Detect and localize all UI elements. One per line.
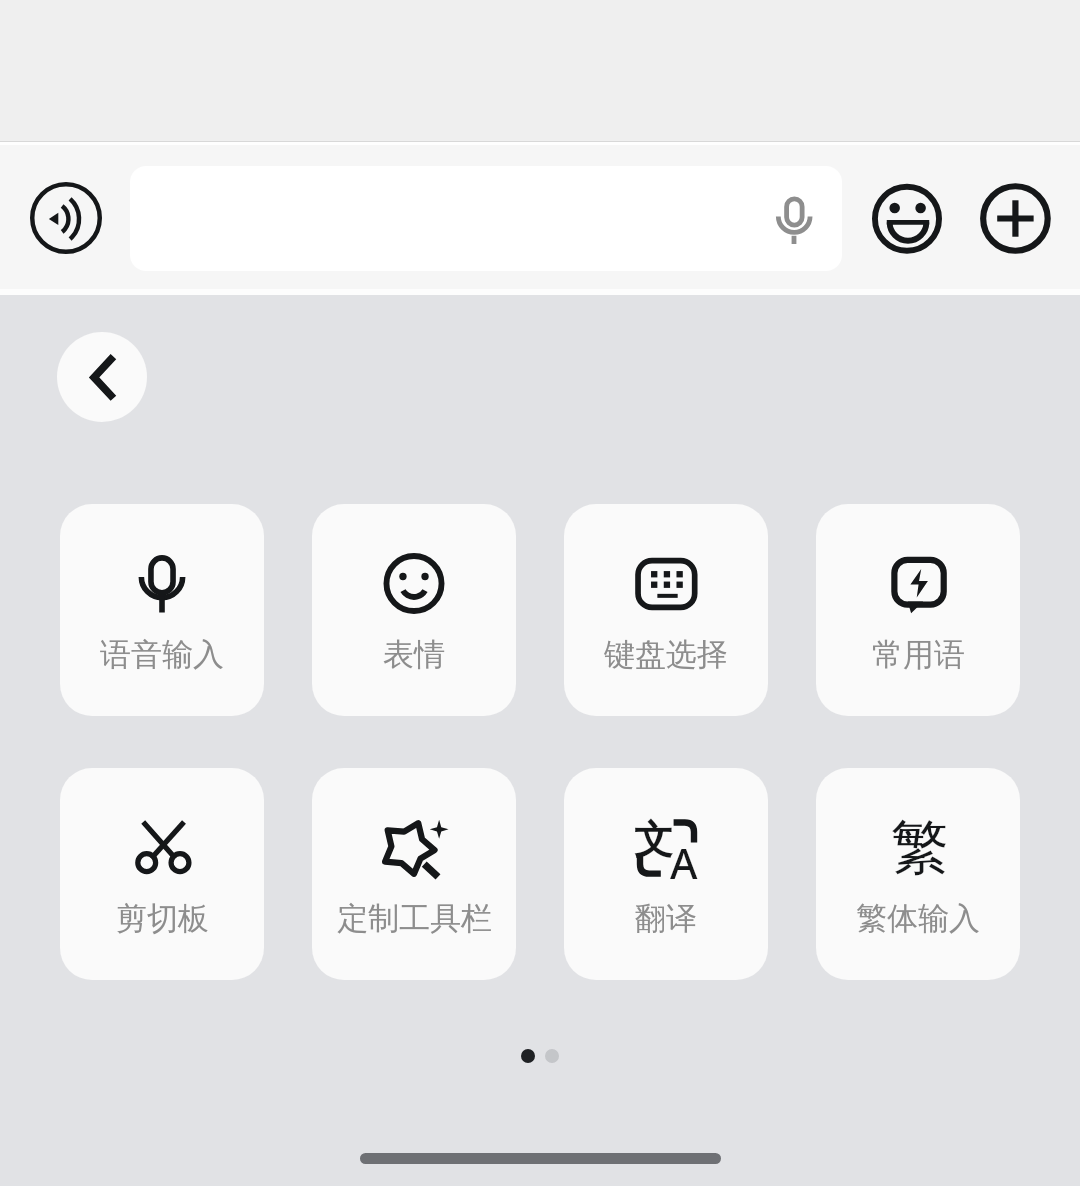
- button[interactable]: Sound settings: [30, 182, 102, 254]
- staticText: 繁: [891, 811, 949, 884]
- staticText: A: [670, 834, 698, 891]
- button[interactable]: Back: [57, 332, 147, 422]
- staticText: 语音输入: [100, 635, 224, 674]
- button[interactable]: Add: [980, 182, 1052, 254]
- button[interactable]: 键盘选择: [564, 504, 768, 716]
- staticText: 翻译: [635, 899, 697, 938]
- staticText: 表情: [383, 635, 445, 674]
- staticText: 键盘选择: [604, 635, 728, 674]
- button[interactable]: 表情: [312, 504, 516, 716]
- staticText: 常用语: [872, 635, 965, 674]
- button[interactable]: 文: [564, 768, 768, 980]
- button[interactable]: 常用语: [816, 504, 1020, 716]
- button[interactable]: Voice input: [766, 192, 822, 248]
- button[interactable]: 语音输入: [60, 504, 264, 716]
- button[interactable]: 繁: [816, 768, 1020, 980]
- button[interactable]: Voice input: [130, 166, 842, 271]
- button[interactable]: Emoji: [872, 182, 944, 254]
- staticText: 定制工具栏: [337, 899, 492, 938]
- button[interactable]: 定制工具栏: [312, 768, 516, 980]
- staticText: 文: [634, 815, 673, 864]
- button[interactable]: 剪切板: [60, 768, 264, 980]
- staticText: 剪切板: [116, 899, 209, 938]
- staticText: 繁体输入: [856, 899, 980, 938]
